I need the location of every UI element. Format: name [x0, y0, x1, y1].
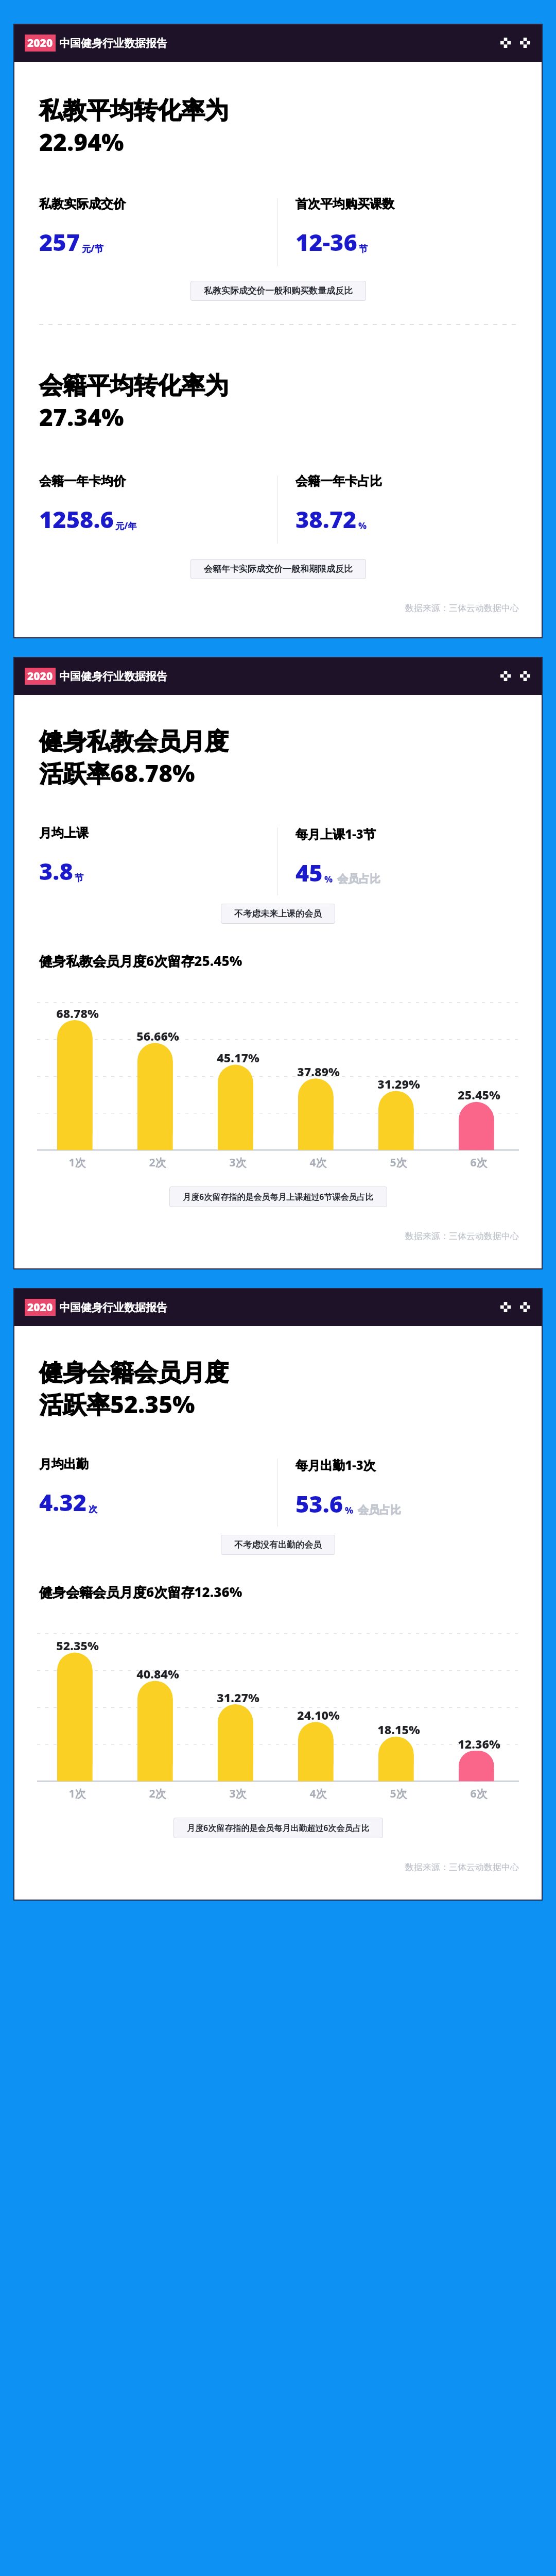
- button[interactable]: 月度6次留存指的是会员每月上课超过6节课会员占比: [169, 1187, 387, 1207]
- staticText: 月均上课: [39, 825, 89, 841]
- staticText: 6次: [439, 1155, 519, 1170]
- staticText: 1次: [37, 1786, 117, 1801]
- staticText: 12-36: [296, 226, 357, 258]
- staticText: 节: [359, 244, 368, 255]
- staticText: 中国健身行业数据报告: [59, 670, 167, 683]
- staticText: %: [324, 873, 333, 885]
- staticText: 3次: [198, 1786, 278, 1801]
- staticText: 5次: [358, 1155, 439, 1170]
- staticText: 2020: [27, 1300, 53, 1315]
- staticText: 健身私教会员月度: [39, 727, 229, 757]
- staticText: 3次: [198, 1155, 278, 1170]
- staticText: 数据来源：三体云动数据中心: [405, 1862, 519, 1873]
- staticText: 12.36%: [440, 1736, 518, 1752]
- staticText: 每月出勤1-3次: [296, 1456, 376, 1473]
- staticText: 私教实际成交价: [39, 196, 126, 212]
- staticText: 中国健身行业数据报告: [59, 1301, 167, 1314]
- button[interactable]: 月均出勤: [13, 1456, 277, 1529]
- staticText: 25.45%: [440, 1087, 518, 1103]
- button[interactable]: 首次平均购买课数: [278, 196, 543, 268]
- staticText: 56.66%: [118, 1028, 197, 1044]
- staticText: 月均出勤: [39, 1456, 89, 1472]
- button[interactable]: 私教实际成交价: [13, 196, 277, 268]
- staticText: 257: [39, 226, 80, 258]
- staticText: 健身会籍会员月度6次留存12.36%: [39, 1583, 242, 1601]
- staticText: 会员占比: [337, 872, 380, 886]
- staticText: 活跃率68.78%: [39, 757, 195, 789]
- staticText: 元/节: [82, 243, 103, 255]
- staticText: 数据来源：三体云动数据中心: [405, 1231, 519, 1242]
- button[interactable]: 不考虑未来上课的会员: [221, 904, 335, 924]
- staticText: 节: [75, 873, 83, 884]
- staticText: 24.10%: [279, 1707, 358, 1723]
- staticText: 52.35%: [38, 1637, 117, 1653]
- staticText: 4次: [278, 1155, 358, 1170]
- staticText: 不考虑没有出勤的会员: [234, 1539, 322, 1550]
- staticText: 每月上课1-3节: [296, 825, 376, 842]
- button[interactable]: 会籍一年卡占比: [278, 473, 543, 546]
- button[interactable]: More options: [500, 38, 530, 48]
- staticText: 2次: [117, 1786, 198, 1801]
- staticText: 会籍年卡实际成交价一般和期限成反比: [204, 564, 353, 574]
- staticText: 月度6次留存指的是会员每月上课超过6节课会员占比: [183, 1191, 374, 1202]
- staticText: 37.89%: [279, 1063, 358, 1079]
- staticText: 私教实际成交价一般和购买数量成反比: [204, 285, 353, 296]
- staticText: 健身会籍会员月度: [39, 1358, 229, 1388]
- staticText: 次: [89, 1504, 97, 1515]
- staticText: 6次: [439, 1786, 519, 1801]
- button[interactable]: 会籍年卡实际成交价一般和期限成反比: [190, 559, 366, 579]
- staticText: 不考虑未来上课的会员: [234, 908, 322, 919]
- staticText: 会员占比: [358, 1503, 401, 1517]
- staticText: 68.78%: [38, 1005, 117, 1021]
- staticText: 3.8: [39, 855, 73, 887]
- staticText: 4.32: [39, 1486, 87, 1518]
- button[interactable]: 每月出勤1-3次: [278, 1456, 543, 1529]
- button[interactable]: 每月上课1-3节: [278, 825, 543, 897]
- staticText: 4次: [278, 1786, 358, 1801]
- staticText: %: [358, 520, 367, 532]
- staticText: 2020: [27, 36, 53, 50]
- button[interactable]: 私教实际成交价一般和购买数量成反比: [190, 281, 366, 301]
- staticText: 40.84%: [118, 1666, 197, 1682]
- staticText: 22.94%: [39, 126, 124, 158]
- staticText: 27.34%: [39, 401, 124, 433]
- button[interactable]: 会籍一年卡均价: [13, 473, 277, 546]
- staticText: 健身私教会员月度6次留存25.45%: [39, 952, 242, 970]
- staticText: 2次: [117, 1155, 198, 1170]
- staticText: 会籍平均转化率为: [39, 371, 229, 401]
- staticText: 首次平均购买课数: [296, 196, 394, 212]
- staticText: 53.6: [296, 1488, 343, 1519]
- staticText: 31.29%: [359, 1076, 438, 1092]
- staticText: 私教平均转化率为: [39, 96, 229, 126]
- staticText: 2020: [27, 669, 53, 684]
- staticText: 月度6次留存指的是会员每月出勤超过6次会员占比: [187, 1822, 370, 1834]
- staticText: 元/年: [115, 520, 137, 532]
- staticText: 18.15%: [359, 1721, 438, 1737]
- staticText: 5次: [358, 1786, 439, 1801]
- staticText: 45.17%: [199, 1049, 277, 1065]
- staticText: %: [345, 1504, 354, 1516]
- staticText: 31.27%: [199, 1689, 277, 1705]
- button[interactable]: More options: [500, 1302, 530, 1312]
- staticText: 会籍一年卡均价: [39, 473, 126, 489]
- button[interactable]: 月度6次留存指的是会员每月出勤超过6次会员占比: [173, 1818, 383, 1838]
- staticText: 中国健身行业数据报告: [59, 37, 167, 50]
- staticText: 1258.6: [39, 503, 114, 535]
- button[interactable]: 月均上课: [13, 825, 277, 897]
- button[interactable]: 不考虑没有出勤的会员: [221, 1535, 335, 1555]
- staticText: 数据来源：三体云动数据中心: [405, 603, 519, 614]
- button[interactable]: More options: [500, 671, 530, 681]
- staticText: 38.72: [296, 503, 357, 535]
- staticText: 活跃率52.35%: [39, 1388, 195, 1420]
- staticText: 会籍一年卡占比: [296, 473, 382, 489]
- staticText: 45: [296, 857, 323, 888]
- staticText: 1次: [37, 1155, 117, 1170]
